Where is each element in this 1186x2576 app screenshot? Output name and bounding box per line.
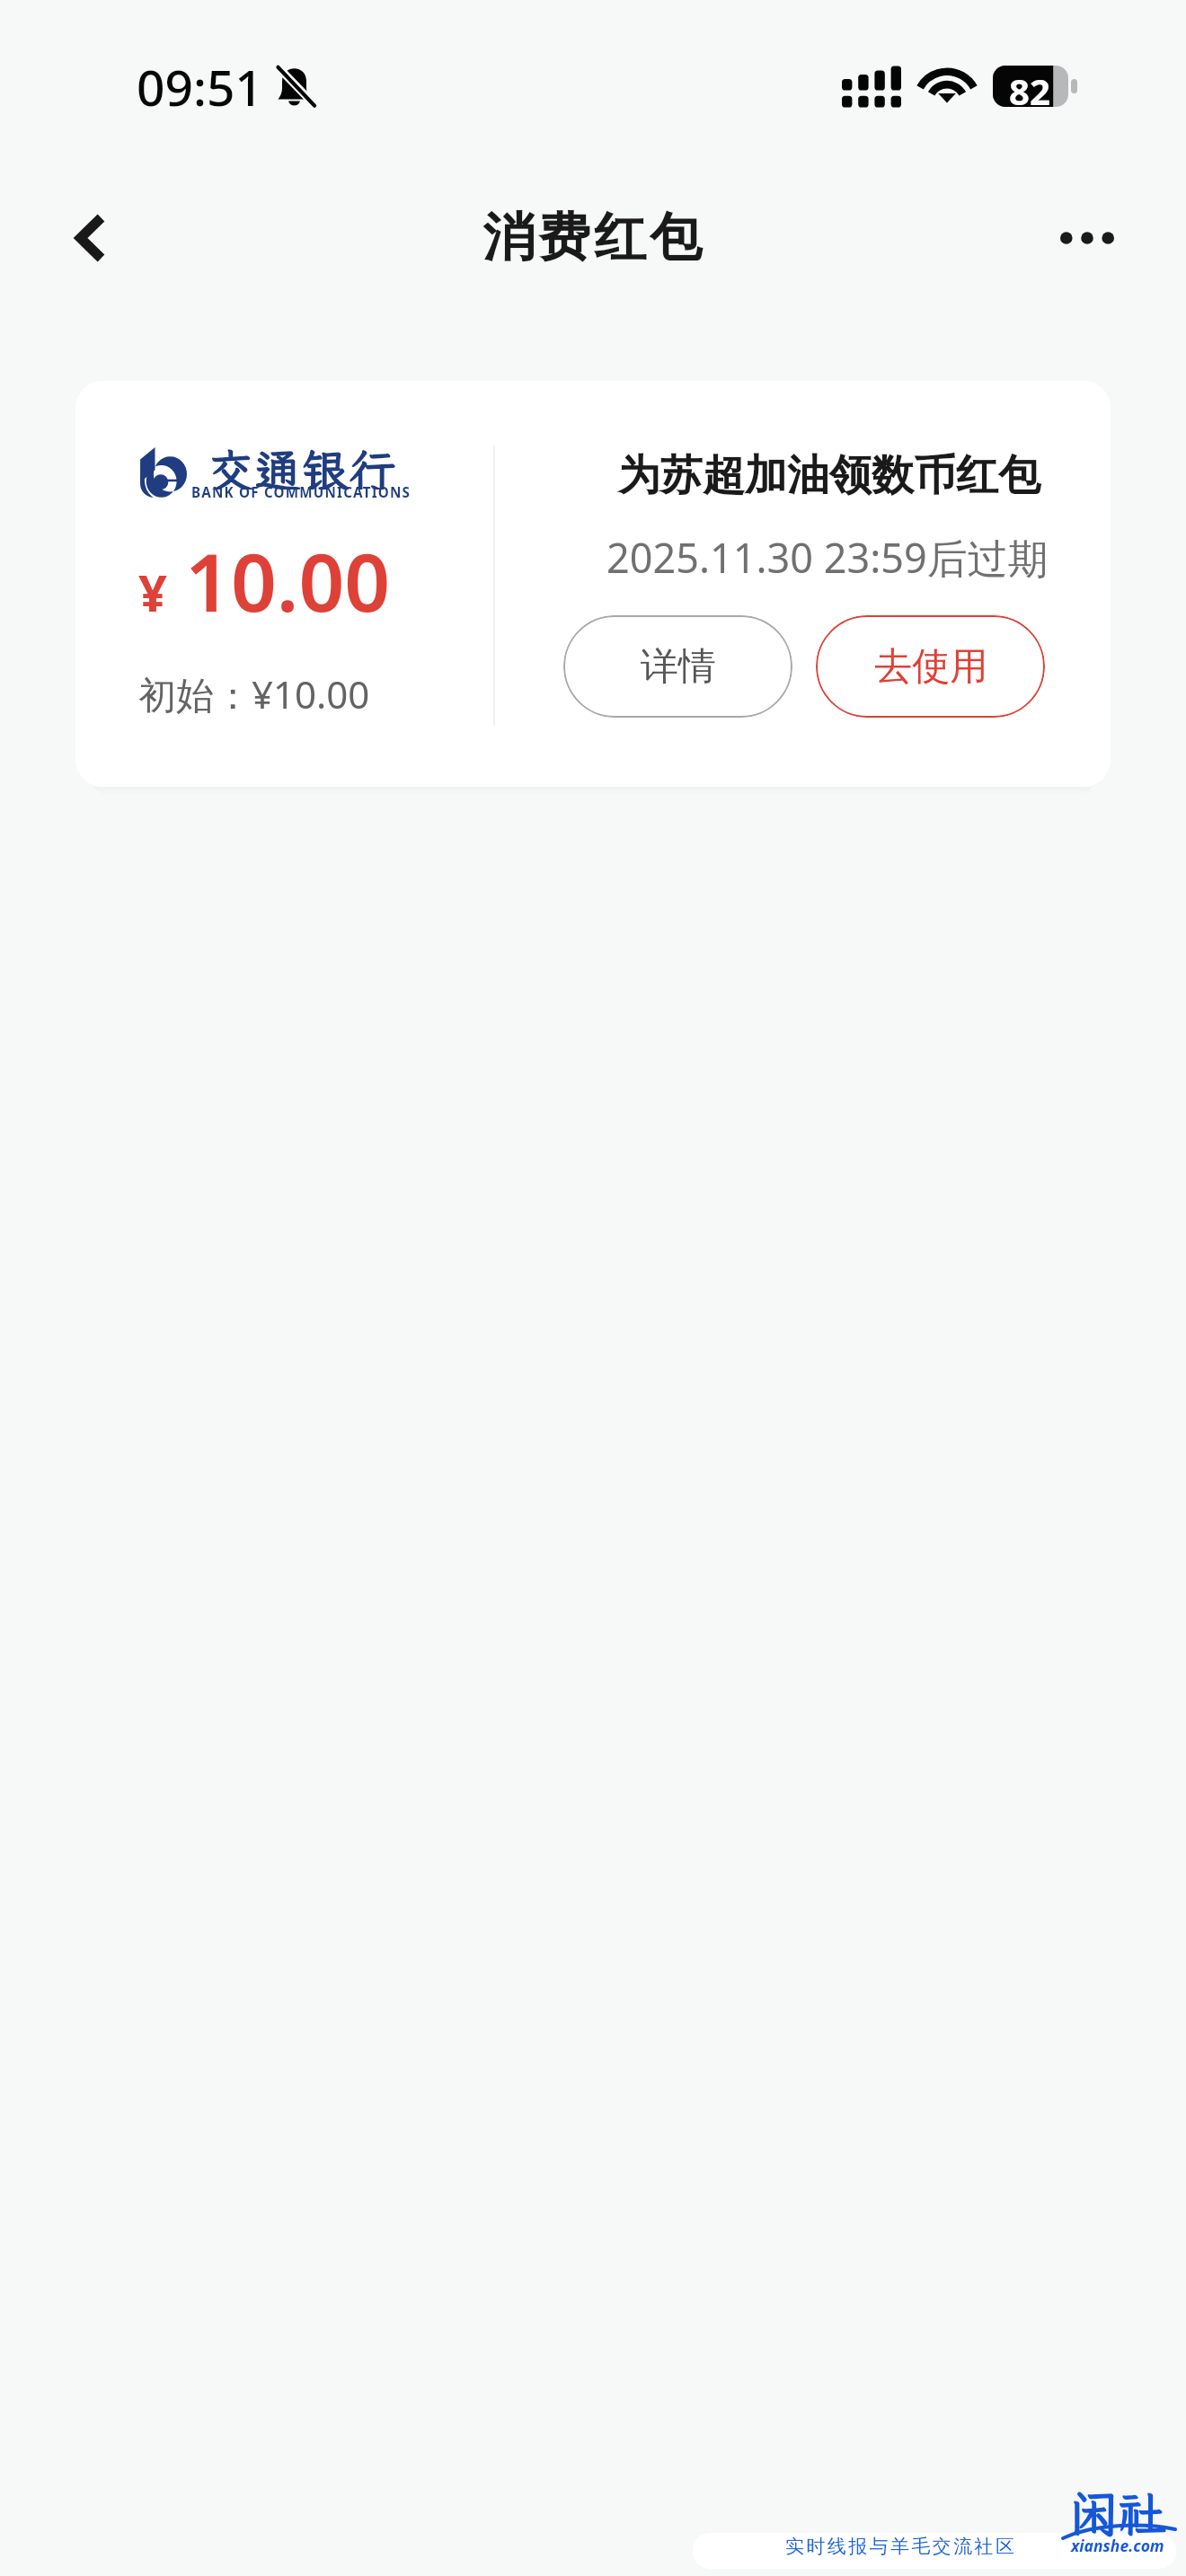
staticText: 09:51 [137,53,263,120]
staticText: 82 [1009,66,1050,115]
staticText: BANK OF COMMUNICATIONS [191,483,412,502]
staticText: 10.00 [185,526,391,635]
staticText: 初始：¥10.00 [138,668,370,719]
button[interactable]: 详情 [563,615,792,718]
button[interactable]: 交通银行 [75,381,1111,787]
staticText: 详情 [641,643,716,691]
staticText: 消费红包 [481,205,704,270]
staticText: 闲社 [1069,2481,1166,2545]
button[interactable]: 去使用 [816,615,1045,718]
staticText: ¥ [138,558,168,626]
button[interactable]: Back [41,189,140,287]
staticText: 为苏超加油领数币红包 [618,449,1040,502]
staticText: 去使用 [874,643,987,691]
staticText: xianshe.com [1071,2535,1164,2556]
staticText: 交通银行 [208,439,397,490]
button[interactable]: More options [1038,189,1137,287]
staticText: 实时线报与羊毛交流社区 [785,2535,1017,2558]
staticText: 2025.11.30 23:59后过期 [606,530,1049,585]
